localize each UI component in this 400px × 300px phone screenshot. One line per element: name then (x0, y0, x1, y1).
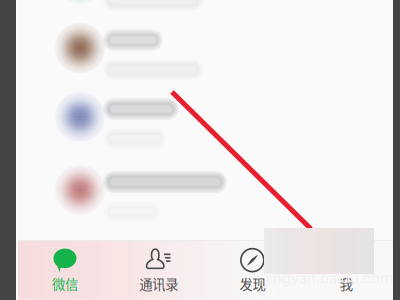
button[interactable]: 我 (299, 241, 393, 300)
staticText: 通讯录 (139, 274, 178, 293)
staticText: 微信 (52, 274, 78, 293)
staticText: 我 (340, 274, 353, 293)
button[interactable]: 微信 (18, 241, 112, 300)
button[interactable]: 通讯录 (112, 241, 206, 300)
button[interactable]: 发现 (205, 241, 299, 300)
staticText: 发现 (239, 274, 265, 293)
staticText: jingyan.baidu.com (265, 269, 393, 287)
